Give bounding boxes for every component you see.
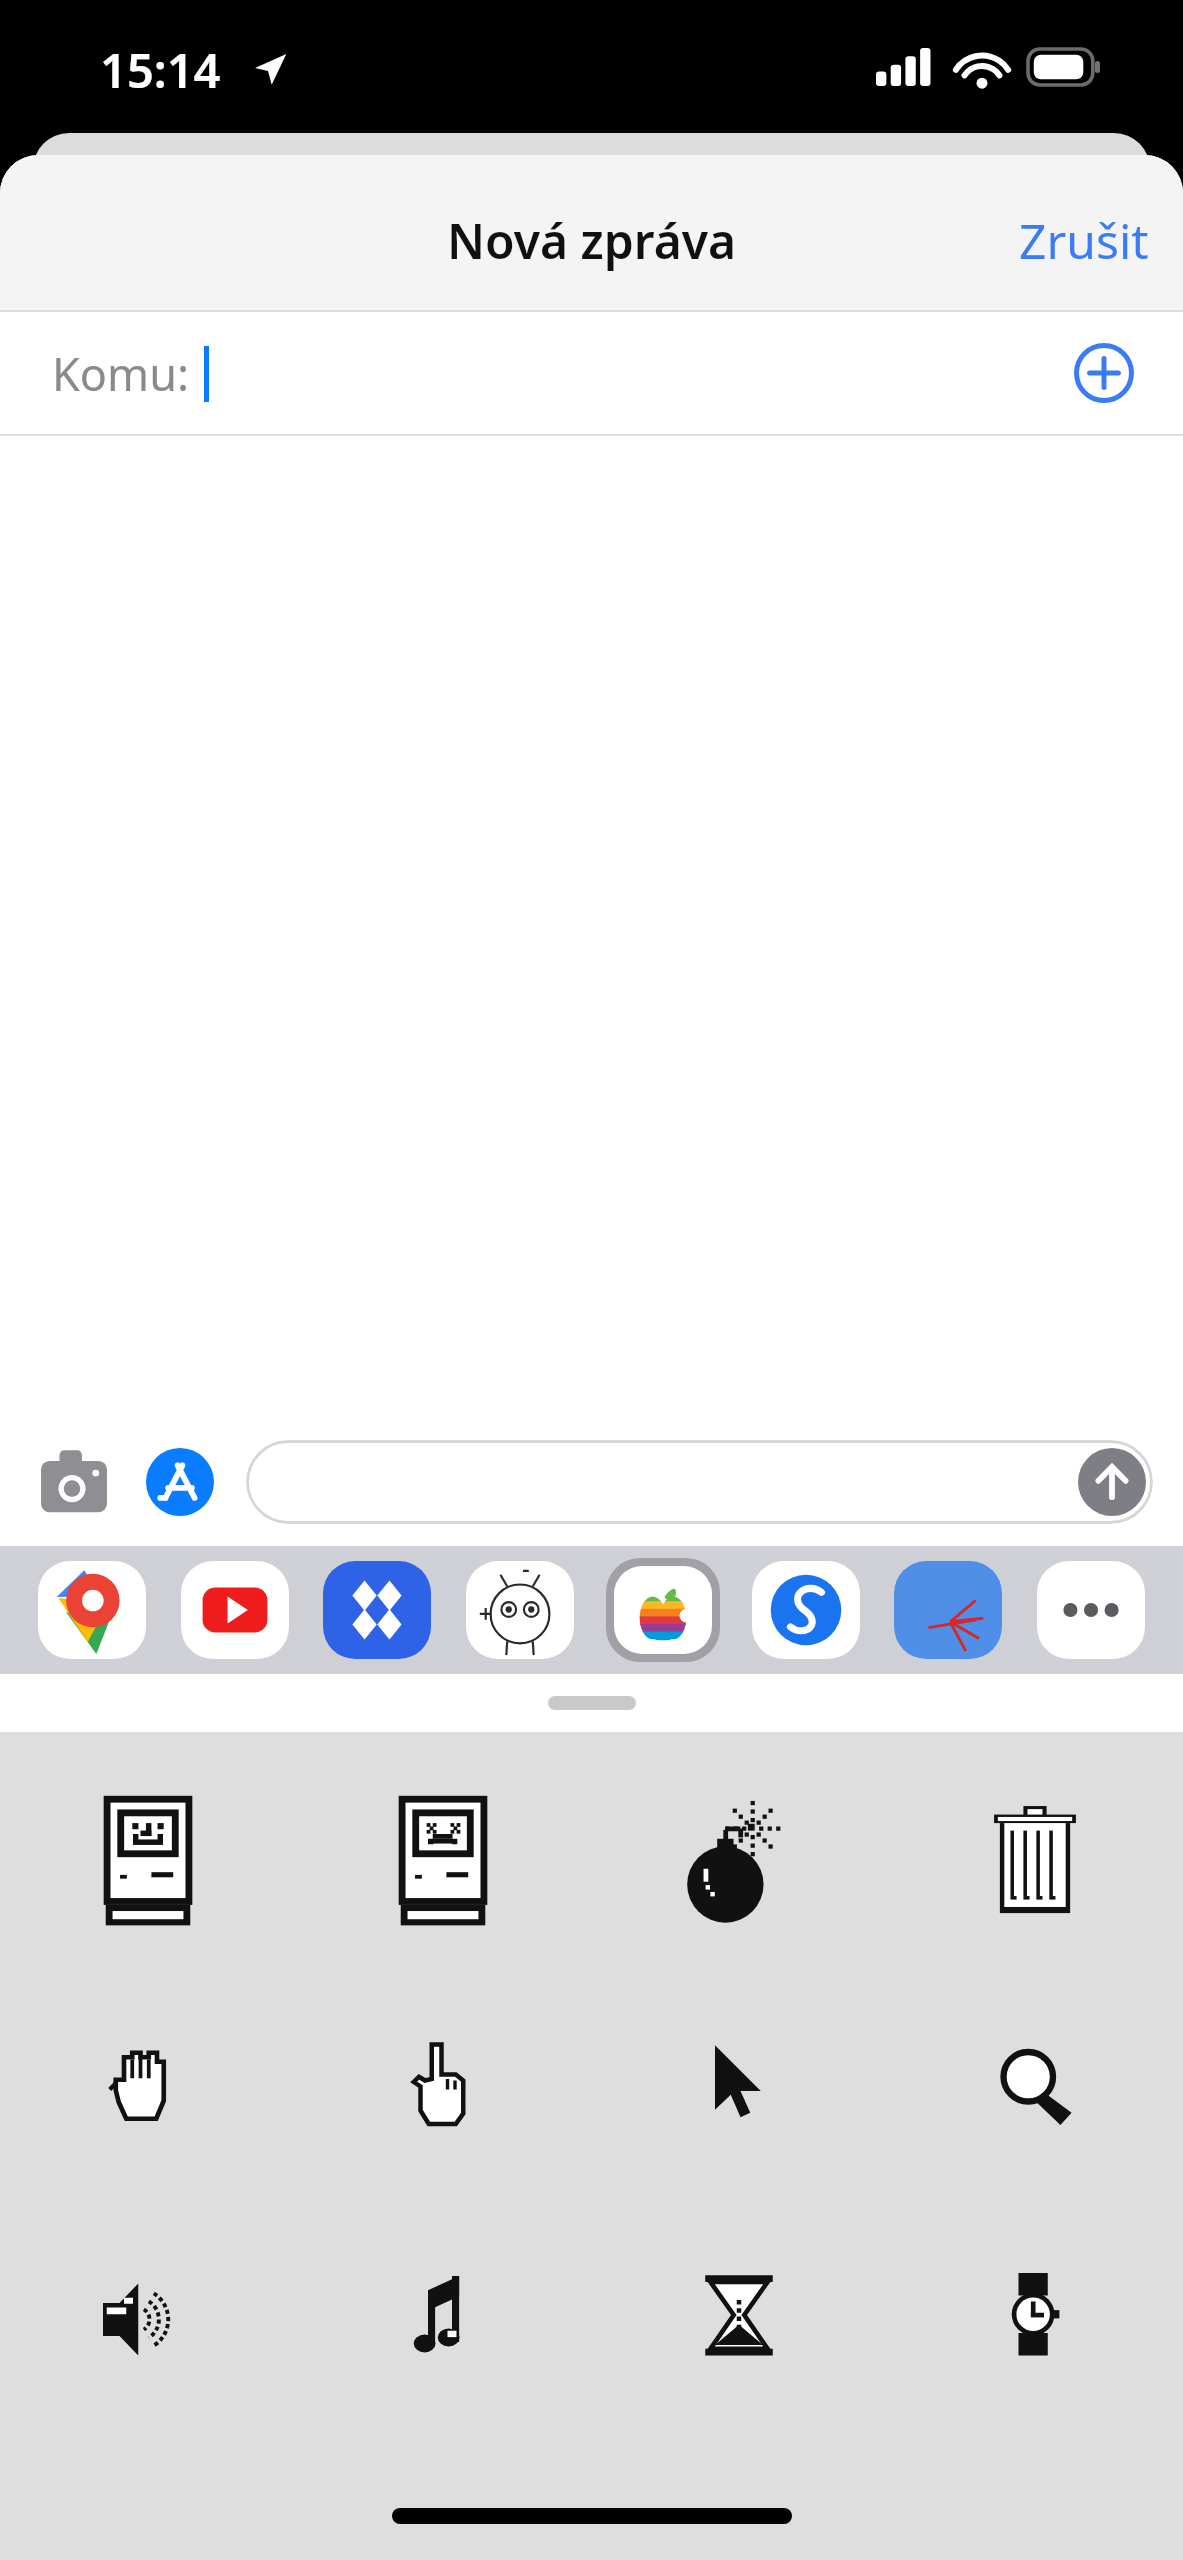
button[interactable]: Zrušit xyxy=(985,188,1183,293)
button[interactable]: Camera xyxy=(30,1438,118,1526)
button[interactable]: More apps xyxy=(1030,1554,1152,1666)
button[interactable]: Bomb xyxy=(591,1760,887,1968)
button[interactable] xyxy=(0,1674,1183,1732)
button[interactable]: Komu: xyxy=(0,310,1183,436)
button[interactable]: Shazam xyxy=(745,1554,867,1666)
button[interactable]: Send xyxy=(1078,1448,1146,1516)
button[interactable]: Pointing hand xyxy=(295,1990,591,2198)
button[interactable]: Dropbox xyxy=(316,1554,438,1666)
button[interactable]: YouTube xyxy=(174,1554,296,1666)
button[interactable]: Add contact xyxy=(1061,330,1147,416)
button[interactable]: Get the Point xyxy=(887,1554,1009,1666)
staticText: Komu: xyxy=(52,343,190,404)
button[interactable]: Happy Mac xyxy=(0,1760,295,1968)
button[interactable]: Apple xyxy=(602,1554,724,1666)
button[interactable]: Watch xyxy=(887,2220,1183,2428)
button[interactable]: Music note xyxy=(295,2220,591,2428)
button[interactable]: Trash xyxy=(887,1760,1183,1968)
button[interactable]: Speaker xyxy=(0,2220,295,2428)
button[interactable]: App Store xyxy=(136,1438,224,1526)
staticText: Nová zpráva xyxy=(447,208,737,273)
staticText: Zrušit xyxy=(1019,208,1149,273)
button[interactable]: Arrow cursor xyxy=(591,1990,887,2198)
button[interactable]: Hourglass xyxy=(591,2220,887,2428)
button[interactable]: Send xyxy=(246,1440,1153,1524)
staticText: 15:14 xyxy=(100,38,221,102)
button[interactable]: Stickers xyxy=(459,1554,581,1666)
button[interactable]: Sad Mac xyxy=(295,1760,591,1968)
button[interactable]: Open hand xyxy=(0,1990,295,2198)
button[interactable]: Google Maps xyxy=(31,1554,153,1666)
button[interactable]: Magnifier xyxy=(887,1990,1183,2198)
